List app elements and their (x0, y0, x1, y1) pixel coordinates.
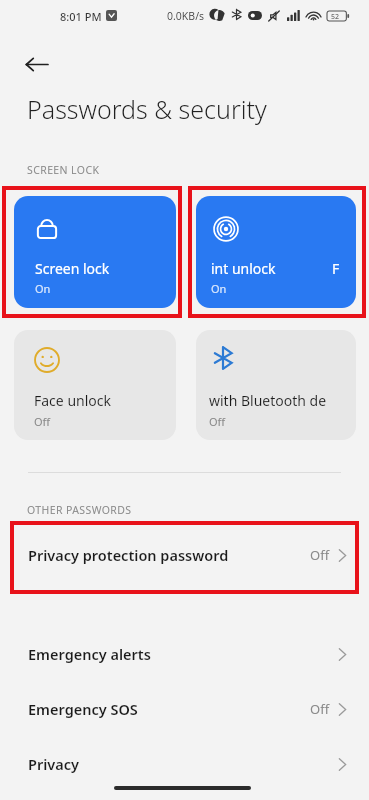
staticText: Off (310, 546, 330, 564)
staticText: with Bluetooth de (209, 391, 327, 410)
staticText: Emergency alerts (28, 644, 338, 664)
button[interactable]: Face unlock (14, 330, 176, 440)
button[interactable]: Privacy protection password (0, 531, 369, 579)
button[interactable]: int unlock (196, 196, 356, 308)
button[interactable]: with Bluetooth de (196, 330, 356, 440)
button[interactable]: Screen lock (14, 196, 176, 308)
staticText: Off (209, 414, 226, 429)
staticText: On (211, 281, 227, 296)
button[interactable]: Emergency SOS (0, 685, 369, 733)
staticText: 0.0KB/s (167, 9, 205, 23)
button[interactable]: Emergency alerts (0, 630, 369, 678)
staticText: OTHER PASSWORDS (27, 503, 132, 517)
staticText: SCREEN LOCK (27, 163, 100, 177)
staticText: Off (34, 414, 51, 429)
staticText: 8:01 PM (60, 9, 102, 24)
staticText: On (35, 281, 51, 296)
staticText: int unlock (211, 259, 276, 278)
button[interactable]: Privacy (0, 740, 369, 788)
button[interactable]: Back (14, 42, 58, 86)
staticText: Off (310, 700, 330, 718)
staticText: Passwords & security (27, 92, 267, 126)
staticText: F (332, 259, 340, 278)
staticText: Privacy (28, 754, 338, 774)
staticText: Emergency SOS (28, 699, 310, 719)
staticText: 52 (331, 12, 340, 22)
staticText: Privacy protection password (28, 545, 310, 565)
staticText: Face unlock (34, 391, 111, 410)
staticText: Screen lock (35, 259, 110, 278)
